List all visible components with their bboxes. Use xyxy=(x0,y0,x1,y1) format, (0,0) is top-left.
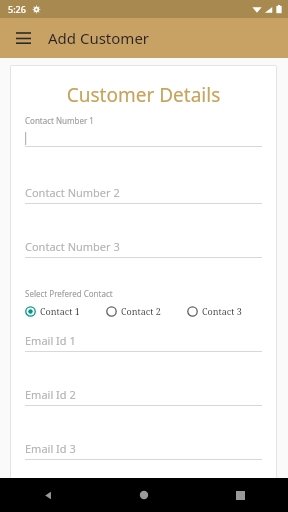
staticText: Email Id 3 xyxy=(25,441,76,456)
button[interactable]: Contact Number 1 xyxy=(25,115,262,147)
button[interactable]: Open navigation menu xyxy=(8,23,38,53)
button[interactable]: Recent apps xyxy=(192,478,288,512)
staticText: Contact Number 3 xyxy=(25,239,120,254)
button[interactable]: Email Id 1 xyxy=(25,333,262,352)
button[interactable]: Email Id 3 xyxy=(25,441,262,460)
button[interactable]: Contact 3 xyxy=(187,305,242,317)
button[interactable]: Contact Number 2 xyxy=(25,185,262,204)
button[interactable]: Home xyxy=(96,478,192,512)
button[interactable]: Contact Number 3 xyxy=(25,239,262,258)
staticText: Email Id 1 xyxy=(25,333,76,348)
button[interactable]: Contact 2 xyxy=(106,305,161,317)
button[interactable]: Contact 1 xyxy=(25,305,80,317)
staticText: Email Id 2 xyxy=(25,387,76,402)
staticText: Contact 3 xyxy=(202,305,242,317)
staticText: Add Customer xyxy=(48,28,150,48)
staticText: 5:26 xyxy=(8,3,26,15)
staticText: Contact 2 xyxy=(121,305,161,317)
staticText: Contact Number 1 xyxy=(25,115,94,126)
button[interactable]: Back xyxy=(0,478,96,512)
staticText: Contact 1 xyxy=(40,305,80,317)
button[interactable]: Email Id 2 xyxy=(25,387,262,406)
staticText: Customer Details xyxy=(10,82,277,108)
staticText: Contact Number 2 xyxy=(25,185,120,200)
staticText: Select Prefered Contact xyxy=(25,288,113,299)
